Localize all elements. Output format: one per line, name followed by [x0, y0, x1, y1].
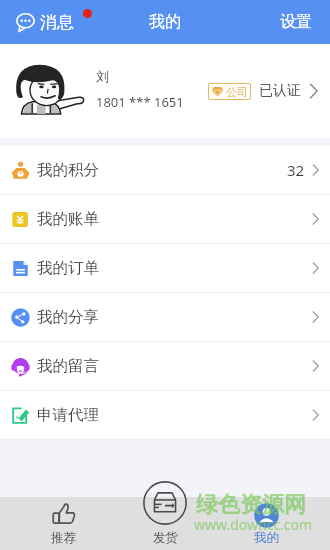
staticText: 公司 — [226, 85, 248, 99]
button[interactable]: 我的账单 — [0, 195, 330, 244]
staticText: 32 — [287, 160, 305, 180]
button[interactable]: 我的分享 — [0, 293, 330, 342]
staticText: 消息 — [40, 12, 74, 33]
button[interactable]: 我的积分 — [0, 146, 330, 195]
staticText: 我的 — [254, 530, 279, 546]
button[interactable]: 我的 — [203, 497, 330, 550]
staticText: 我的积分 — [37, 160, 99, 180]
staticText: 推荐 — [51, 530, 76, 546]
button[interactable]: 设置 — [262, 1, 330, 43]
button[interactable]: 我的留言 — [0, 342, 330, 391]
staticText: 我的 — [149, 12, 181, 32]
button[interactable]: 我的订单 — [0, 244, 330, 293]
button[interactable]: 刘 — [0, 44, 330, 138]
staticText: 申请代理 — [37, 405, 99, 425]
button[interactable]: 推荐 — [0, 497, 127, 550]
staticText: 我的订单 — [37, 258, 99, 278]
staticText: 我的账单 — [37, 209, 99, 229]
staticText: 绿色资源网 — [196, 491, 306, 519]
staticText: 1801 *** 1651 — [96, 93, 184, 111]
staticText: 刘 — [96, 68, 109, 84]
button[interactable]: 消息 — [0, 0, 102, 44]
staticText: www.downcc.com — [194, 515, 313, 534]
button[interactable]: 发货 — [127, 497, 203, 550]
staticText: 我的留言 — [37, 356, 99, 376]
button[interactable]: 申请代理 — [0, 391, 330, 440]
staticText: 发货 — [153, 530, 178, 546]
staticText: 已认证 — [259, 82, 301, 100]
staticText: 我的分享 — [37, 307, 99, 327]
